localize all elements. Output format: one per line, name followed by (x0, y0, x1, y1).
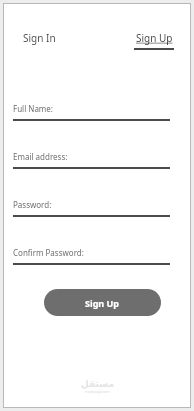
staticText: Sign Up (85, 297, 120, 309)
staticText: Password: (13, 199, 52, 210)
button[interactable]: Confirm Password: (13, 247, 170, 265)
staticText: mostaql.com (85, 389, 110, 394)
button[interactable]: Sign Up (132, 29, 176, 52)
button[interactable]: Sign In (21, 29, 58, 47)
staticText: Confirm Password: (13, 247, 84, 258)
button[interactable]: Sign Up (44, 289, 161, 316)
staticText: Email address: (13, 151, 68, 162)
staticText: Sign In (23, 31, 56, 45)
button[interactable]: Password: (13, 199, 170, 217)
staticText: Full Name: (13, 103, 54, 114)
button[interactable]: Email address: (13, 151, 170, 169)
staticText: مستقل (81, 379, 114, 389)
staticText: Sign Up (136, 31, 173, 45)
button[interactable]: Full Name: (13, 103, 170, 121)
